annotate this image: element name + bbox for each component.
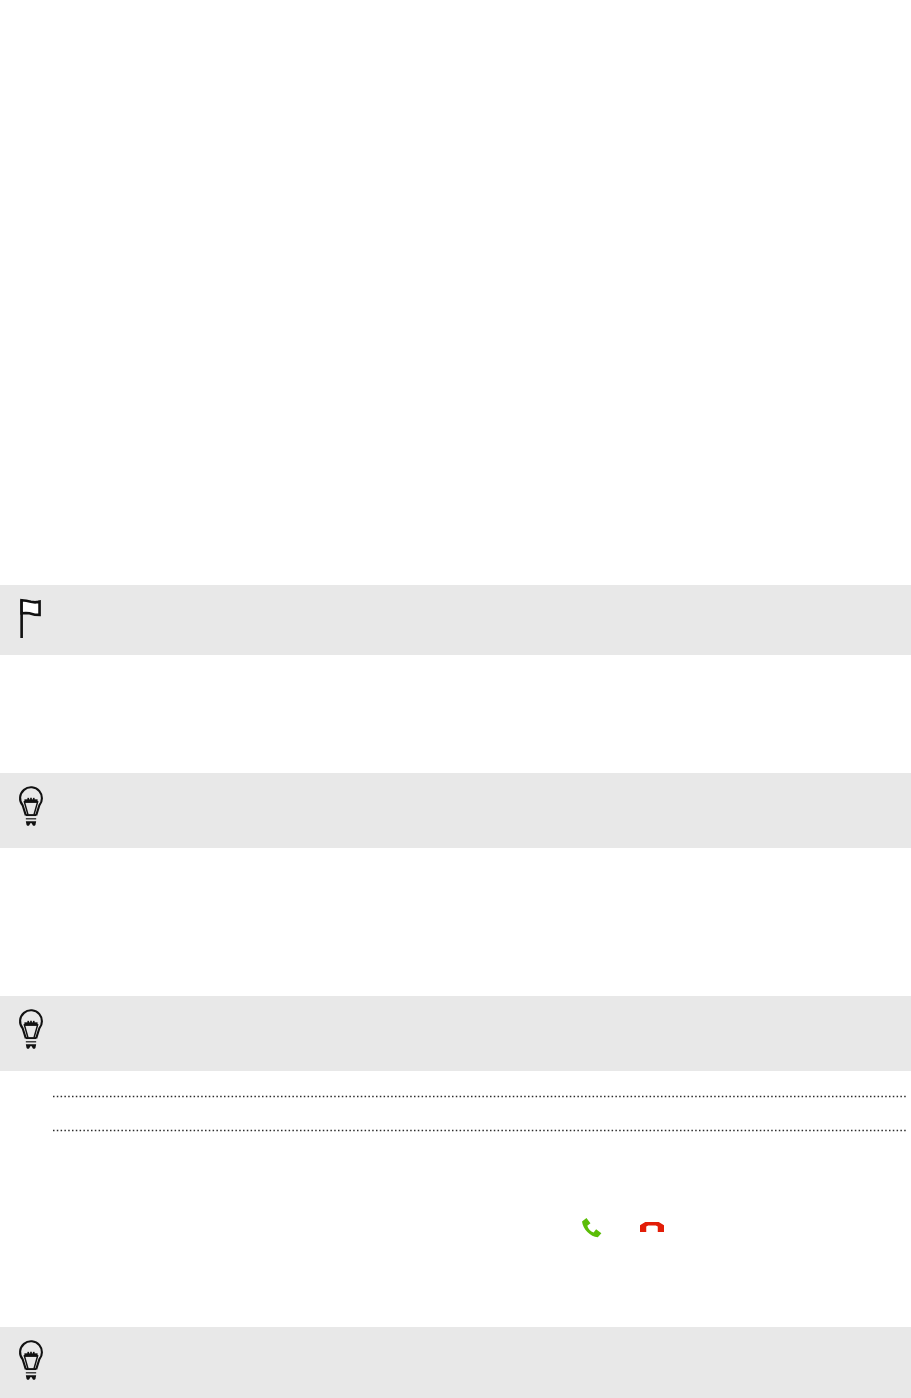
button[interactable]: Tip (0, 773, 911, 848)
other: Tip (19, 786, 43, 826)
button[interactable]: Tip (0, 996, 911, 1071)
other: Note (20, 599, 41, 638)
button[interactable]: Tip (0, 1327, 911, 1398)
other: Tip (19, 1009, 43, 1049)
button[interactable]: Answer call (581, 1217, 602, 1238)
button[interactable]: End call (640, 1222, 664, 1232)
other: Tip (19, 1340, 43, 1380)
button[interactable]: Note (0, 585, 911, 655)
